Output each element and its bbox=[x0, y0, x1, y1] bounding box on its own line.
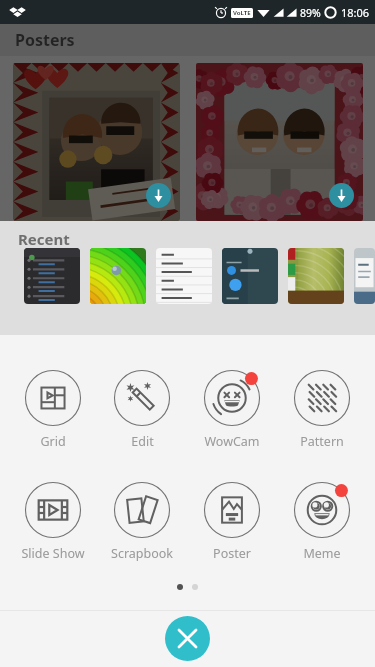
staticText: Pattern bbox=[300, 433, 344, 450]
button[interactable]: Poster bbox=[187, 479, 277, 562]
button[interactable]: WowCam bbox=[187, 367, 277, 450]
staticText: Slide Show bbox=[21, 545, 85, 562]
staticText: Poster bbox=[213, 545, 251, 562]
button[interactable]: Edit bbox=[97, 367, 187, 450]
staticText: 89% bbox=[300, 6, 321, 20]
staticText: Scrapbook bbox=[111, 545, 173, 562]
staticText: 18:06 bbox=[341, 5, 370, 20]
button[interactable]: Download bbox=[329, 183, 354, 208]
button[interactable]: Meme bbox=[277, 479, 367, 562]
button[interactable] bbox=[90, 248, 146, 304]
staticText: Posters bbox=[15, 29, 75, 51]
button[interactable]: Grid bbox=[8, 367, 97, 450]
staticText: Grid bbox=[40, 433, 66, 450]
button[interactable] bbox=[156, 248, 212, 304]
staticText: Recent bbox=[18, 229, 70, 249]
staticText: Meme bbox=[303, 545, 341, 562]
button[interactable] bbox=[354, 248, 375, 304]
button[interactable] bbox=[24, 248, 80, 304]
staticText: Edit bbox=[131, 433, 154, 450]
staticText: WowCam bbox=[204, 433, 260, 450]
button[interactable] bbox=[222, 248, 278, 304]
button[interactable]: Download bbox=[13, 63, 180, 221]
button[interactable]: Pattern bbox=[277, 367, 367, 450]
button[interactable]: Scrapbook bbox=[97, 479, 187, 562]
button[interactable]: Close bbox=[165, 616, 210, 661]
staticText: VoLTE bbox=[233, 9, 251, 17]
button[interactable] bbox=[288, 248, 344, 304]
button[interactable]: Slide Show bbox=[8, 479, 97, 562]
button[interactable]: Download bbox=[146, 183, 171, 208]
button[interactable]: Download bbox=[196, 63, 363, 221]
